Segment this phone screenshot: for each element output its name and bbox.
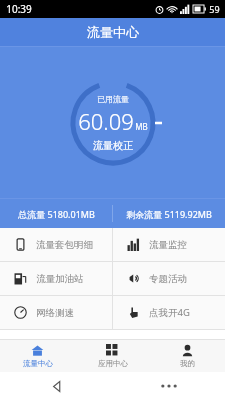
staticText: 已用流量	[97, 94, 129, 104]
staticText: 流量套包明细	[36, 239, 93, 251]
staticText: 59	[209, 3, 220, 15]
staticText: 流量中心	[87, 24, 139, 40]
staticText: 我的	[180, 359, 195, 368]
button[interactable]: 应用中心	[75, 340, 150, 372]
button[interactable]: 流量加油站	[0, 262, 112, 295]
button[interactable]: 我的	[150, 340, 225, 372]
button[interactable]: 流量套包明细	[0, 228, 112, 261]
button[interactable]: 流量监控	[113, 228, 225, 261]
staticText: 60.09	[78, 106, 134, 136]
staticText: 专题活动	[149, 273, 187, 285]
button[interactable]: 专题活动	[113, 262, 225, 295]
staticText: 流量监控	[149, 239, 187, 251]
staticText: 应用中心	[98, 359, 128, 368]
button[interactable]: Recent apps	[112, 372, 225, 400]
staticText: 流量校正	[93, 139, 133, 152]
button[interactable]: 网络测速	[0, 296, 112, 329]
staticText: 流量中心	[23, 359, 53, 368]
staticText: 10:39	[6, 2, 32, 16]
staticText: 点我开4G	[149, 306, 190, 319]
staticText: MB	[135, 121, 148, 132]
staticText: 流量加油站	[36, 273, 84, 285]
staticText: 总流量 5180.01MB	[18, 208, 95, 220]
button[interactable]: Back	[0, 372, 112, 400]
staticText: 剩余流量 5119.92MB	[126, 208, 212, 220]
staticText: 网络测速	[36, 307, 74, 319]
button[interactable]: 流量中心	[0, 340, 75, 372]
button[interactable]: 点我开4G	[113, 296, 225, 329]
button[interactable]: 已用流量	[78, 94, 148, 152]
